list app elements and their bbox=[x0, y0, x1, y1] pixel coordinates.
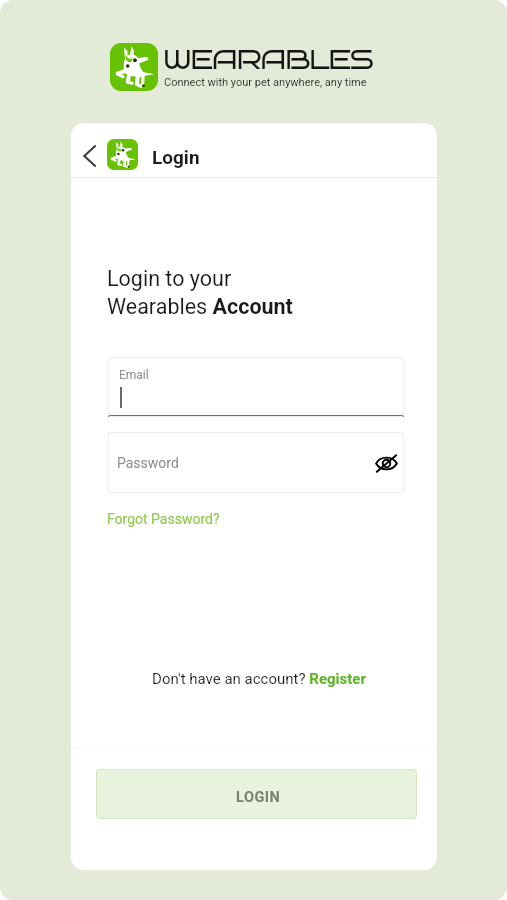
button[interactable]: Forgot Password? bbox=[107, 511, 220, 527]
staticText: WEARABLES bbox=[163, 43, 373, 76]
staticText: Connect with your pet anywhere, any time bbox=[164, 76, 367, 89]
button[interactable]: Don't have an account? Register bbox=[152, 670, 366, 688]
button[interactable]: Password bbox=[108, 432, 404, 493]
button[interactable]: LOGIN bbox=[96, 769, 417, 819]
staticText: Password bbox=[117, 455, 179, 471]
button[interactable]: Email bbox=[108, 357, 404, 417]
staticText: Login to your Wearables Account bbox=[107, 266, 293, 319]
staticText: LOGIN bbox=[236, 789, 281, 806]
button[interactable]: Back bbox=[73, 139, 107, 173]
button[interactable]: Show password bbox=[371, 448, 401, 478]
staticText: Forgot Password? bbox=[107, 511, 220, 527]
staticText: Email bbox=[119, 368, 149, 382]
staticText: Login bbox=[152, 146, 200, 168]
